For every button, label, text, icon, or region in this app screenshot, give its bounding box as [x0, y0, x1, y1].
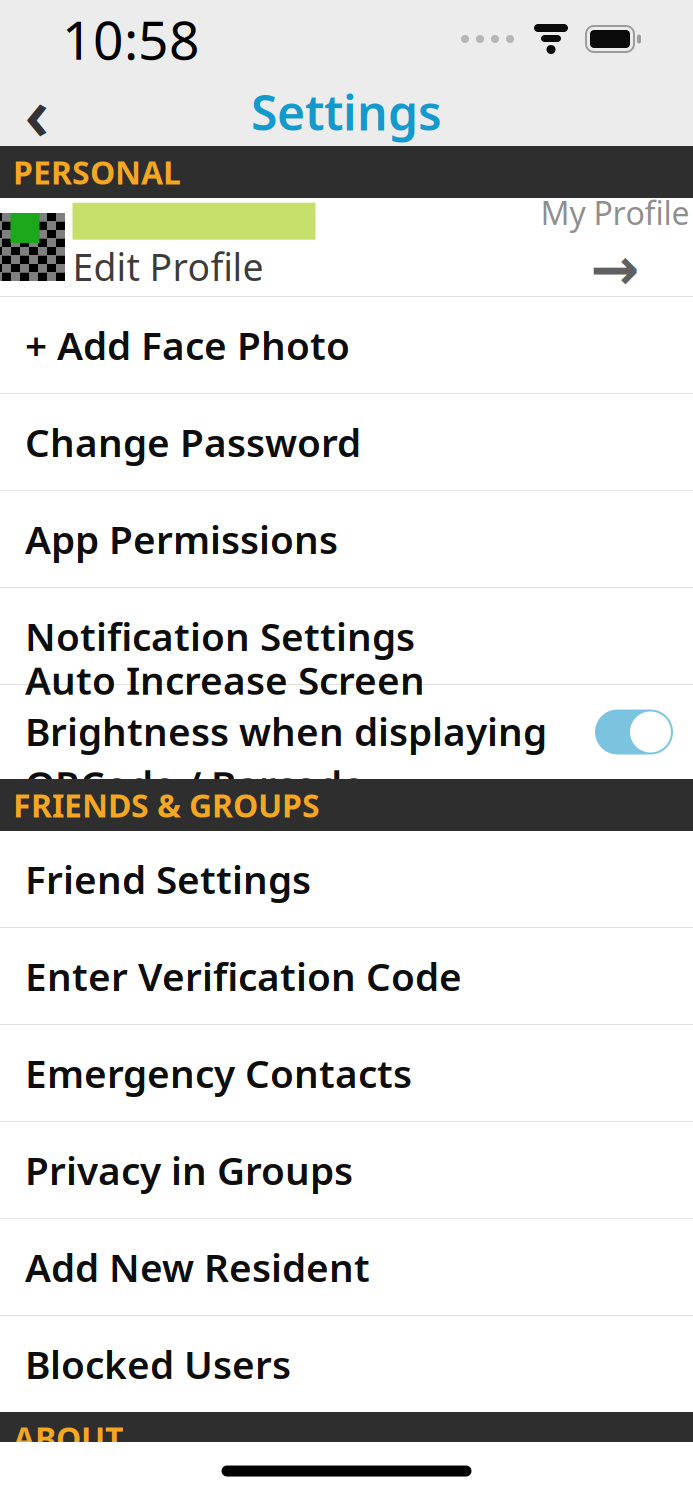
staticText: Privacy in Groups	[25, 1144, 353, 1196]
button[interactable]: Friend Settings	[0, 831, 693, 927]
staticText: Change Password	[25, 416, 361, 468]
staticText: Friend Settings	[25, 853, 311, 905]
staticText: + Add Face Photo	[25, 319, 350, 371]
button[interactable]: Blocked Users	[0, 1316, 693, 1412]
button[interactable]: Add New Resident	[0, 1219, 693, 1315]
staticText: Settings	[251, 80, 442, 144]
button[interactable]: Edit Profile	[0, 198, 693, 296]
staticText: Emergency Contacts	[25, 1047, 412, 1099]
staticText: My Profile	[540, 191, 689, 234]
button[interactable]: + Add Face Photo	[0, 297, 693, 393]
staticText: →	[590, 236, 639, 303]
button[interactable]: Emergency Contacts	[0, 1025, 693, 1121]
staticText: ABOUT	[13, 1417, 123, 1459]
staticText: Auto Increase Screen Brightness when dis…	[25, 654, 547, 757]
button[interactable]: Change Password	[0, 394, 693, 490]
staticText: 10:58	[62, 4, 200, 74]
staticText: FRIENDS & GROUPS	[13, 784, 320, 826]
staticText: QRCode / Barcode	[25, 759, 365, 810]
staticText: App Permissions	[25, 513, 338, 565]
staticText: ‹	[24, 64, 49, 160]
button[interactable]: Privacy in Groups	[0, 1122, 693, 1218]
staticText: Notification Settings	[25, 610, 415, 662]
staticText: Enter Verification Code	[25, 950, 462, 1002]
staticText: Add New Resident	[25, 1241, 370, 1293]
button[interactable]: Enter Verification Code	[0, 928, 693, 1024]
button[interactable]: Back	[0, 77, 74, 147]
staticText: PERSONAL	[13, 151, 181, 193]
staticText: Edit Profile	[72, 242, 263, 291]
button[interactable]: Auto Increase Screen Brightness when dis…	[0, 685, 693, 779]
staticText: Blocked Users	[25, 1338, 291, 1390]
button[interactable]: Notification Settings	[0, 588, 693, 684]
button[interactable]: App Permissions	[0, 491, 693, 587]
